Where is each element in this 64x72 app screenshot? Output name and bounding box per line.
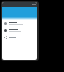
button[interactable]: Share [2, 34, 37, 41]
button[interactable] [2, 27, 37, 34]
button[interactable] [2, 20, 37, 27]
other: Share [4, 36, 7, 39]
